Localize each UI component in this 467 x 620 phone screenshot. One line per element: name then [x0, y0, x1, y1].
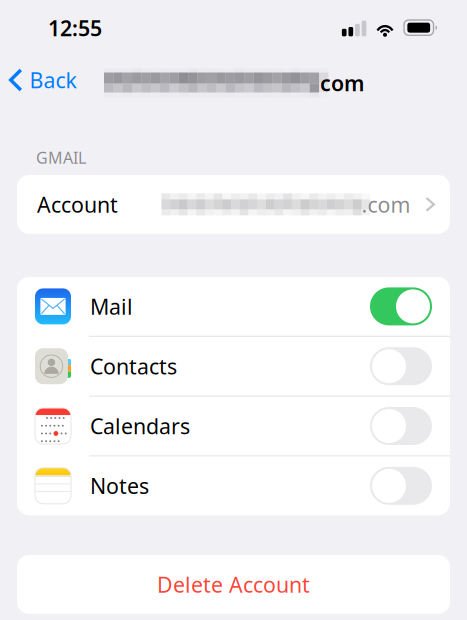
staticText: Mail	[90, 292, 133, 320]
button[interactable]: Calendars	[17, 397, 450, 455]
button[interactable]: Contacts	[17, 337, 450, 396]
button[interactable]: Back	[0, 58, 86, 102]
button[interactable]: Delete Account	[17, 555, 450, 614]
staticText: Account	[37, 190, 118, 218]
button[interactable]: Notes	[17, 456, 450, 515]
staticText: .com	[361, 190, 410, 218]
staticText: Back	[29, 66, 76, 94]
staticText: GMAIL	[36, 147, 86, 168]
button[interactable]: Account	[17, 175, 450, 234]
staticText: Contacts	[90, 352, 177, 380]
staticText: Notes	[90, 472, 149, 500]
staticText: 12:55	[48, 14, 102, 42]
staticText: com	[320, 69, 364, 97]
staticText: Delete Account	[157, 570, 310, 598]
staticText: Calendars	[90, 412, 190, 440]
button[interactable]: Mail	[17, 277, 450, 336]
